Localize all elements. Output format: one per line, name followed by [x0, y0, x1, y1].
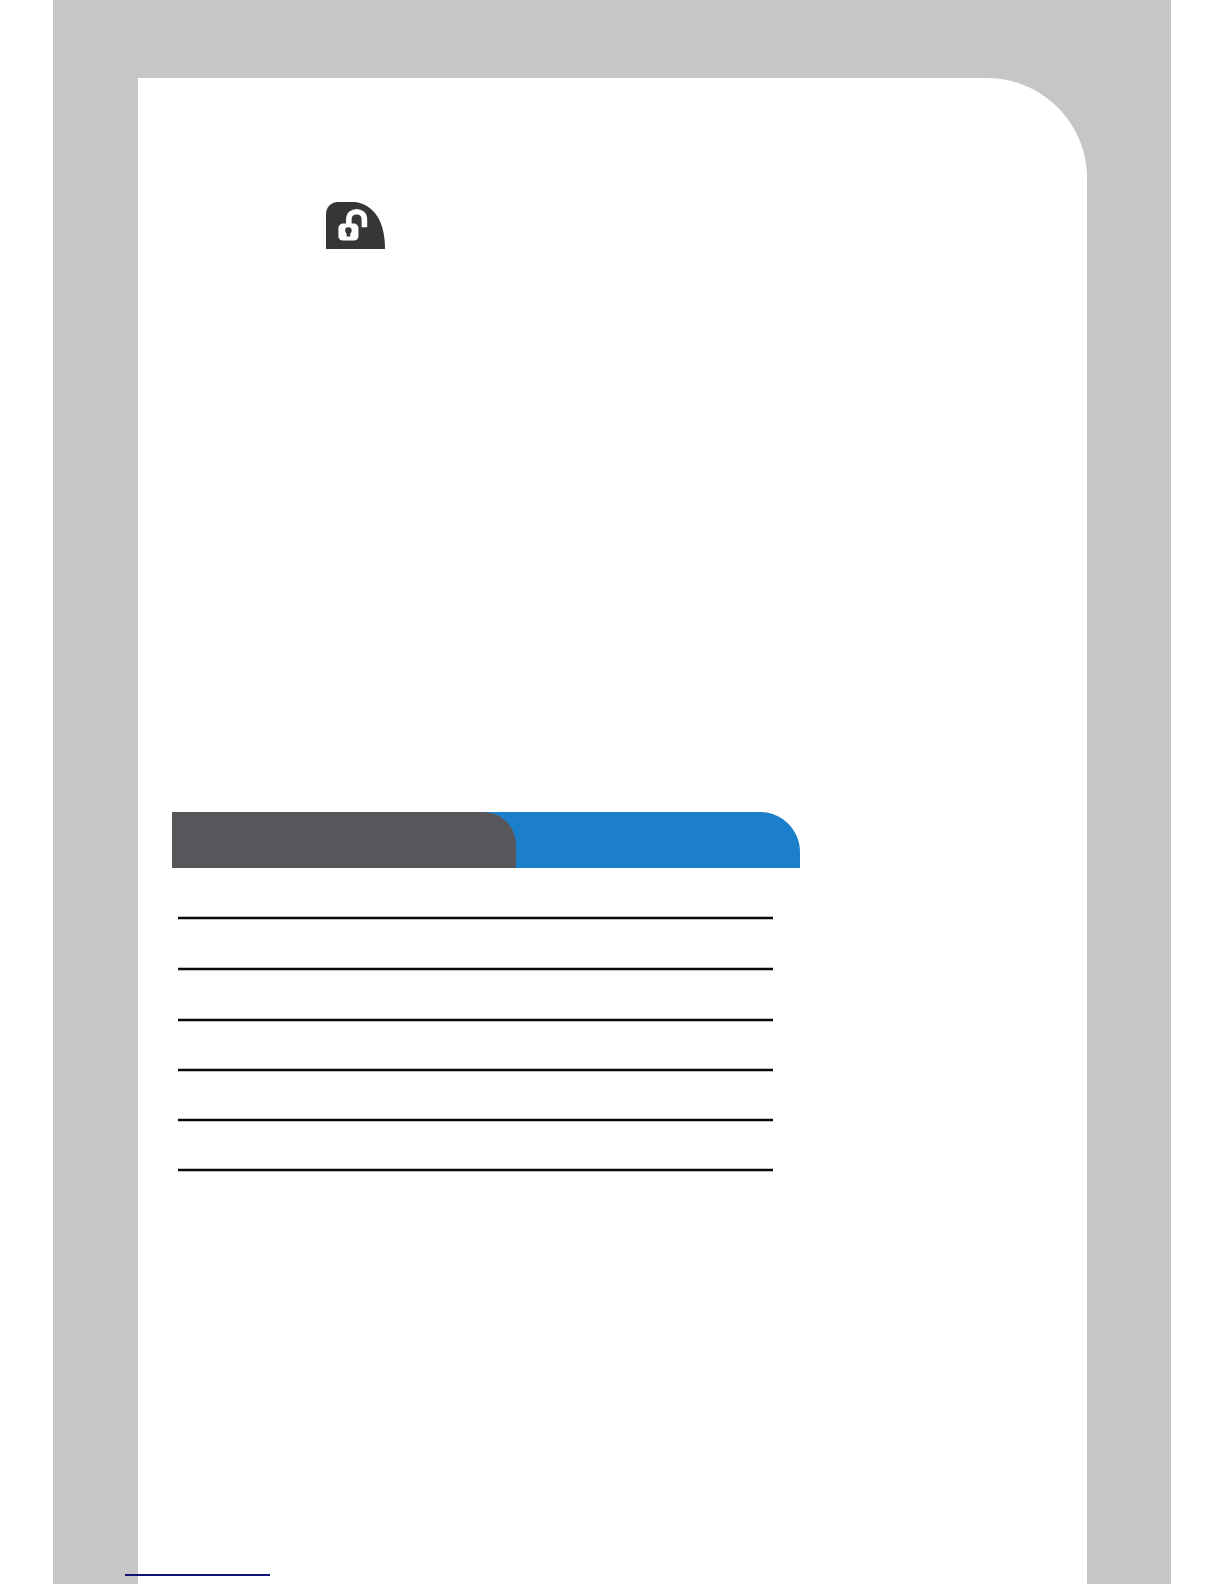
button[interactable]	[516, 812, 800, 868]
button[interactable]	[172, 812, 516, 868]
button[interactable]: Unlocked	[326, 202, 385, 249]
